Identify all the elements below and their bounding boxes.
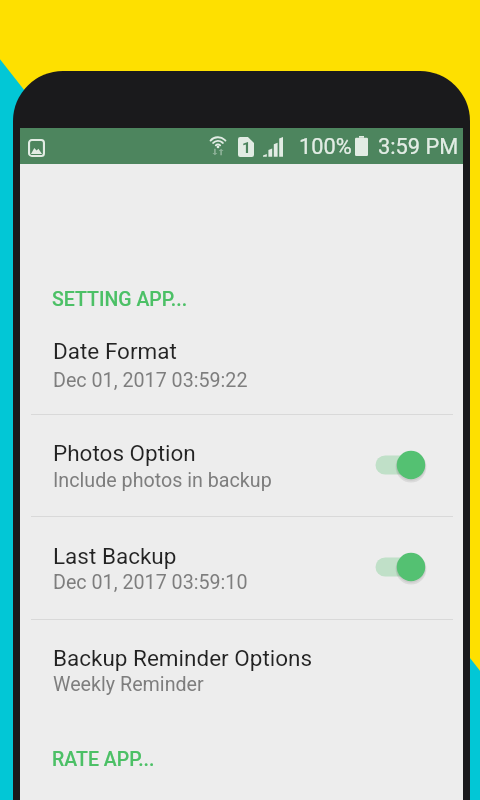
- other: SIM 1: [238, 137, 254, 157]
- staticText: Dec 01, 2017 03:59:10: [53, 571, 248, 594]
- button[interactable]: Backup Reminder Options: [20, 619, 463, 722]
- staticText: 100%: [299, 134, 352, 160]
- button[interactable]: Toggle setting, on: [356, 547, 428, 587]
- staticText: Weekly Reminder: [53, 673, 204, 696]
- staticText: Backup Reminder Options: [53, 645, 313, 671]
- other: Battery full: [355, 136, 368, 156]
- other: Cellular signal full: [263, 137, 283, 157]
- staticText: 3:59 PM: [378, 134, 459, 160]
- staticText: Include photos in backup: [53, 469, 272, 492]
- button[interactable]: RATE APP...: [20, 731, 463, 771]
- staticText: 1: [242, 139, 251, 157]
- button[interactable]: Photos Option: [20, 414, 463, 516]
- staticText: Date Format: [53, 338, 177, 364]
- button[interactable]: SETTING APP...: [20, 272, 463, 312]
- staticText: Last Backup: [53, 543, 177, 569]
- staticText: SETTING APP...: [52, 288, 188, 311]
- button[interactable]: Last Backup: [20, 516, 463, 619]
- button[interactable]: Date Format: [20, 312, 463, 414]
- button[interactable]: Toggle setting, on: [356, 445, 428, 485]
- staticText: Photos Option: [53, 440, 196, 466]
- staticText: Dec 01, 2017 03:59:22: [53, 369, 248, 392]
- other: Wi-Fi connected: [208, 136, 228, 157]
- staticText: RATE APP...: [52, 748, 155, 771]
- other: Screenshot captured: [28, 139, 45, 157]
